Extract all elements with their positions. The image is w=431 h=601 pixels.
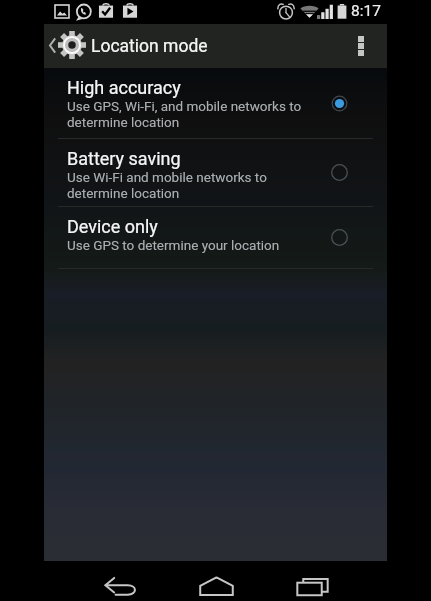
staticText: determine location [67, 185, 180, 201]
button[interactable]: Back [88, 561, 152, 601]
staticText: Battery saving [67, 148, 181, 169]
button[interactable]: More options [351, 24, 387, 68]
staticText: determine location [67, 114, 180, 130]
staticText: Use GPS, Wi-Fi, and mobile networks to [67, 98, 302, 114]
staticText: Use Wi-Fi and mobile networks to [67, 169, 267, 185]
button[interactable]: Battery saving [44, 139, 387, 206]
button[interactable]: Navigate up [44, 24, 264, 68]
button[interactable]: Home [184, 561, 248, 601]
button[interactable]: Device only [44, 207, 387, 268]
staticText: Use GPS to determine your location [67, 237, 280, 253]
staticText: 8:17 [351, 2, 381, 20]
staticText: Location mode [91, 36, 208, 57]
button[interactable]: Recent apps [280, 561, 344, 601]
staticText: Device only [67, 216, 158, 237]
button[interactable]: High accuracy [44, 68, 387, 138]
staticText: High accuracy [67, 77, 181, 98]
